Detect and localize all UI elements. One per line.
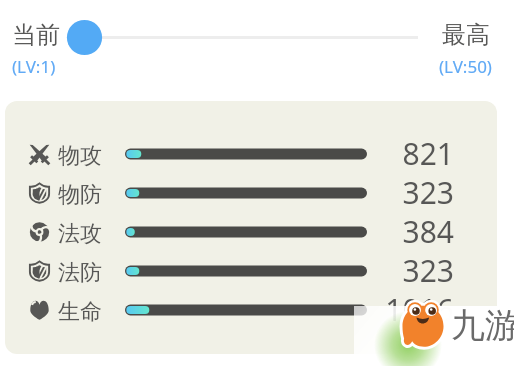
staticText: 821 xyxy=(354,133,454,173)
button[interactable]: 法攻 xyxy=(0,212,514,252)
button[interactable]: 当前 xyxy=(0,0,110,92)
staticText: (LV:50) xyxy=(439,55,492,78)
button[interactable]: 最高 xyxy=(430,0,514,92)
staticText: 法防 xyxy=(58,259,102,287)
button[interactable]: 生命 xyxy=(0,290,514,330)
staticText: 384 xyxy=(354,211,454,251)
staticText: 九游 xyxy=(451,304,514,347)
staticText: 当前 xyxy=(12,20,60,50)
button[interactable]: 物防 xyxy=(0,173,514,213)
staticText: 323 xyxy=(354,250,454,290)
staticText: 九游 xyxy=(451,304,514,347)
staticText: 物攻 xyxy=(58,142,102,170)
button[interactable]: 物攻 xyxy=(0,134,514,174)
staticText: 最高 xyxy=(442,20,490,50)
button[interactable]: 法防 xyxy=(0,251,514,291)
staticText: 物防 xyxy=(58,181,102,209)
staticText: 法攻 xyxy=(58,220,102,248)
button[interactable]: Level slider xyxy=(62,14,432,60)
staticText: 1016 xyxy=(354,289,454,329)
staticText: 生命 xyxy=(58,298,102,326)
staticText: 323 xyxy=(354,172,454,212)
staticText: (LV:1) xyxy=(12,55,56,78)
